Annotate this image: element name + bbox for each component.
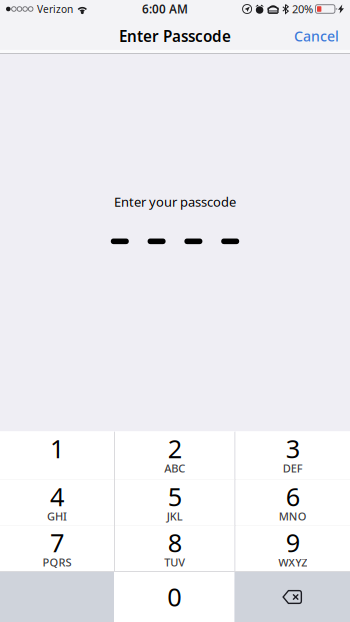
staticText: Enter your passcode	[114, 193, 236, 210]
staticText: 2	[168, 431, 182, 466]
button[interactable]: 7	[0, 526, 114, 571]
staticText: GHI	[47, 509, 67, 524]
button[interactable]: 8	[115, 526, 234, 571]
staticText: 3	[286, 431, 300, 466]
button[interactable]: 5	[115, 480, 234, 525]
button[interactable]: Delete	[234, 572, 350, 622]
button[interactable]: 4	[0, 480, 114, 525]
staticText: 0	[167, 579, 181, 614]
button[interactable]: 0	[114, 572, 234, 622]
staticText: PQRS	[42, 555, 71, 570]
button[interactable]: Cancel	[283, 18, 350, 54]
staticText: MNO	[279, 509, 307, 524]
staticText: TUV	[164, 555, 185, 570]
staticText: 5	[168, 479, 182, 514]
staticText: 9	[286, 525, 300, 560]
button[interactable]: 1	[0, 432, 114, 479]
button[interactable]: 9	[235, 526, 350, 571]
staticText: Enter Passcode	[119, 26, 231, 46]
staticText: 1	[50, 431, 64, 466]
staticText: DEF	[283, 461, 303, 476]
staticText: Cancel	[294, 26, 339, 46]
staticText: Verizon	[37, 2, 73, 16]
staticText: 7	[50, 525, 64, 560]
staticText: WXYZ	[278, 555, 307, 570]
staticText: JKL	[167, 509, 183, 524]
staticText: 20%	[292, 1, 313, 17]
button[interactable]: 6	[235, 480, 350, 525]
button[interactable]: 2	[115, 432, 234, 479]
staticText: 6:00 AM	[142, 1, 188, 17]
staticText: 4	[50, 479, 64, 514]
staticText: 8	[168, 525, 182, 560]
staticText: 6	[286, 479, 300, 514]
button[interactable]: 3	[235, 432, 350, 479]
staticText: ABC	[164, 461, 185, 476]
